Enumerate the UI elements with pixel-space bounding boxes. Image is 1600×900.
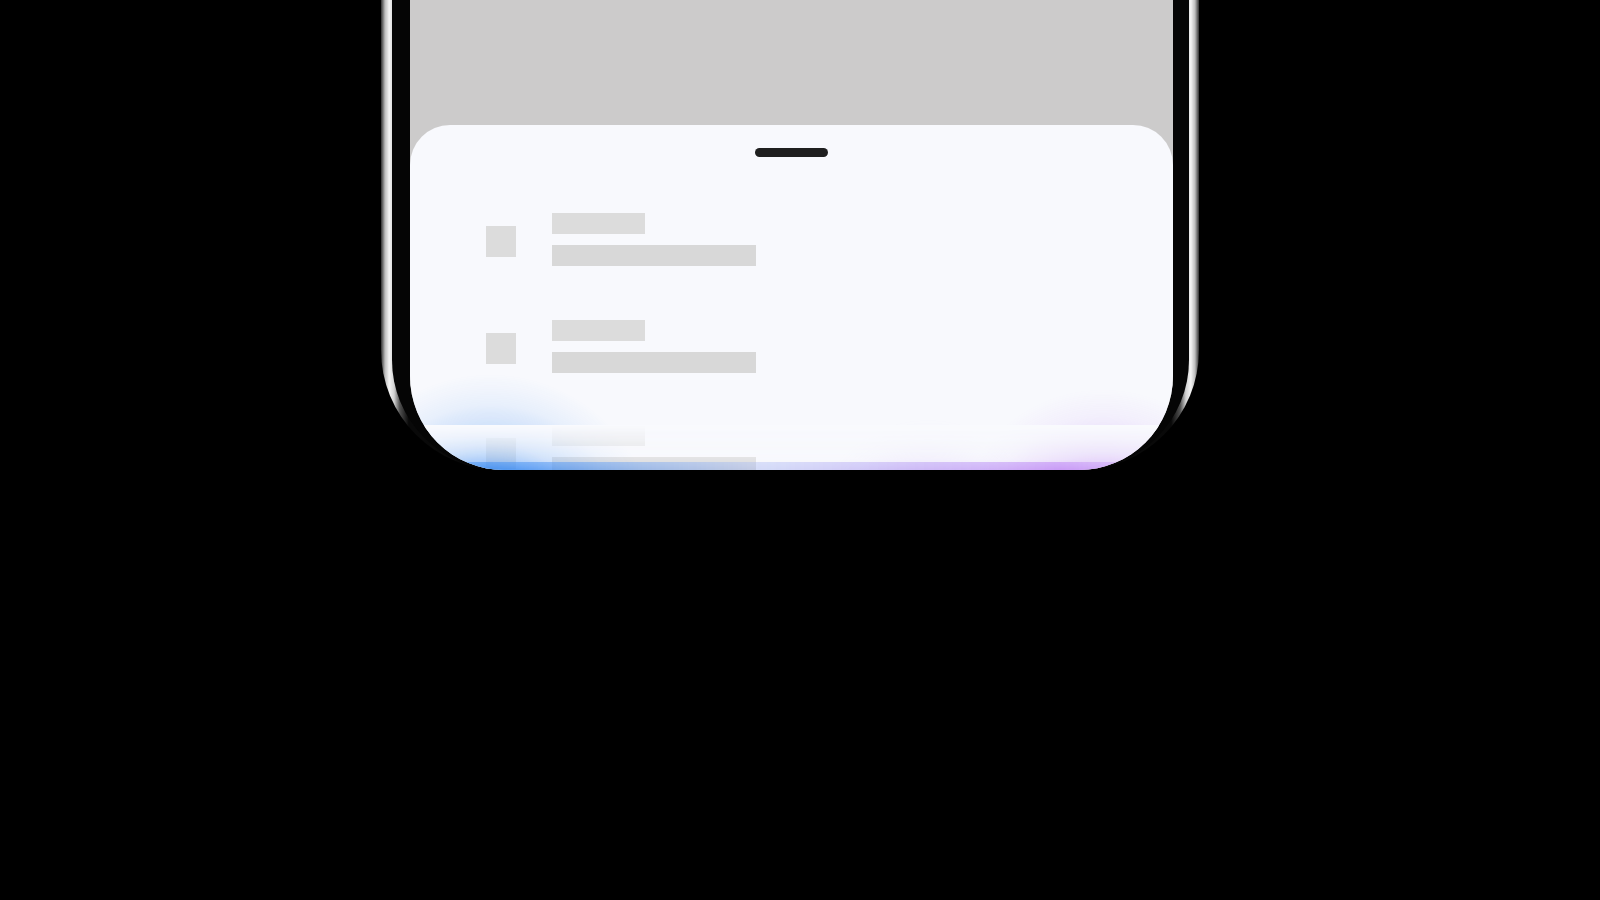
button[interactable]	[755, 148, 828, 157]
